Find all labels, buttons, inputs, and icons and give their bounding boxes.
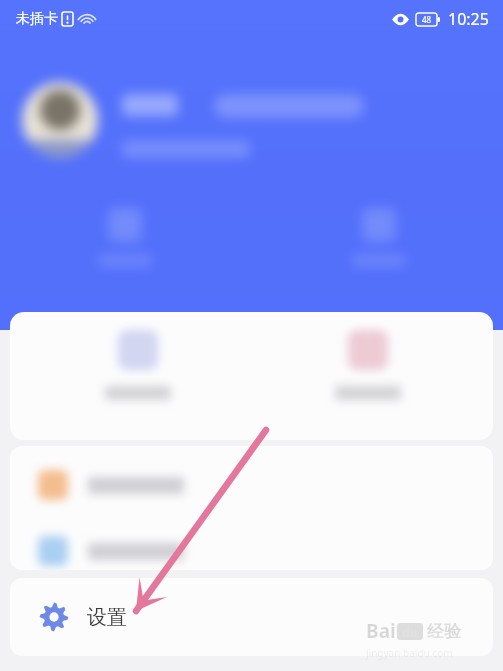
staticText: 未插卡 <box>16 10 58 28</box>
button[interactable] <box>328 330 408 400</box>
staticText: jingyan.baidu.com <box>366 646 453 660</box>
button[interactable] <box>22 82 98 158</box>
staticText: 48 <box>422 14 432 25</box>
other: 设置 <box>39 602 69 632</box>
staticText: Bai <box>366 618 396 644</box>
staticText: 10:25 <box>448 8 489 30</box>
button[interactable] <box>10 458 493 512</box>
staticText: 经验 <box>427 621 461 642</box>
button[interactable] <box>10 524 493 570</box>
staticText: 设置 <box>87 605 127 630</box>
button[interactable]: 设置 <box>10 578 493 656</box>
button[interactable] <box>98 330 178 400</box>
